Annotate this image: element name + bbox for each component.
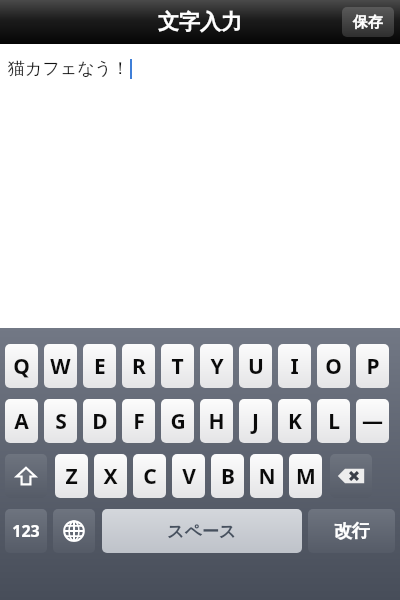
staticText: J	[252, 407, 259, 436]
button[interactable]: M	[289, 454, 322, 498]
button[interactable]: K	[278, 399, 311, 443]
staticText: V	[182, 462, 196, 491]
button[interactable]: H	[200, 399, 233, 443]
button[interactable]: —	[356, 399, 389, 443]
staticText: S	[55, 407, 67, 436]
staticText: 改行	[334, 520, 370, 543]
button[interactable]: E	[83, 344, 116, 388]
staticText: I	[290, 352, 299, 381]
staticText: T	[171, 352, 184, 381]
button[interactable]: Backspace	[330, 454, 372, 498]
button[interactable]: S	[44, 399, 77, 443]
staticText: 保存	[353, 13, 383, 32]
staticText: Q	[13, 352, 30, 381]
button[interactable]: Shift	[5, 454, 47, 498]
staticText: A	[14, 407, 29, 436]
button[interactable]: 123	[5, 509, 47, 553]
staticText: 文字入力	[158, 9, 242, 35]
button[interactable]: P	[356, 344, 389, 388]
button[interactable]: C	[133, 454, 166, 498]
staticText: D	[92, 407, 108, 436]
staticText: E	[94, 352, 106, 381]
button[interactable]: R	[122, 344, 155, 388]
staticText: M	[296, 462, 316, 491]
button[interactable]: 改行	[308, 509, 395, 553]
staticText: R	[132, 352, 146, 381]
staticText: P	[366, 352, 380, 381]
staticText: 猫カフェなう！	[8, 58, 129, 79]
staticText: O	[325, 352, 342, 381]
staticText: U	[248, 352, 264, 381]
staticText: L	[328, 407, 340, 436]
staticText: 123	[12, 520, 40, 542]
button[interactable]: Y	[200, 344, 233, 388]
button[interactable]: スペース	[102, 509, 302, 553]
button[interactable]: F	[122, 399, 155, 443]
staticText: X	[103, 462, 118, 491]
button[interactable]: Change keyboard language	[53, 509, 95, 553]
staticText: K	[288, 407, 302, 436]
button[interactable]: J	[239, 399, 272, 443]
button[interactable]: 猫カフェなう！	[0, 44, 400, 328]
staticText: N	[258, 462, 276, 491]
staticText: H	[208, 407, 225, 436]
button[interactable]: L	[317, 399, 350, 443]
staticText: F	[133, 407, 145, 436]
staticText: W	[50, 352, 71, 381]
button[interactable]: A	[5, 399, 38, 443]
button[interactable]: T	[161, 344, 194, 388]
button[interactable]: W	[44, 344, 77, 388]
button[interactable]: B	[211, 454, 244, 498]
button[interactable]: O	[317, 344, 350, 388]
staticText: Y	[210, 352, 224, 381]
staticText: C	[143, 462, 157, 491]
button[interactable]: G	[161, 399, 194, 443]
button[interactable]: I	[278, 344, 311, 388]
staticText: —	[362, 407, 383, 436]
staticText: G	[170, 407, 186, 436]
button[interactable]: 保存	[342, 7, 394, 37]
button[interactable]: V	[172, 454, 205, 498]
staticText: Z	[65, 462, 78, 491]
staticText: B	[221, 462, 235, 491]
button[interactable]: Z	[55, 454, 88, 498]
button[interactable]: N	[250, 454, 283, 498]
button[interactable]: Q	[5, 344, 38, 388]
button[interactable]: D	[83, 399, 116, 443]
staticText: スペース	[167, 521, 237, 542]
button[interactable]: X	[94, 454, 127, 498]
button[interactable]: U	[239, 344, 272, 388]
